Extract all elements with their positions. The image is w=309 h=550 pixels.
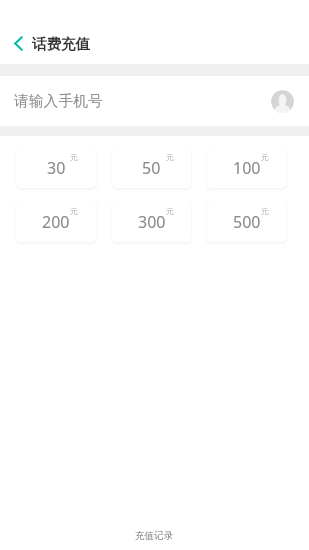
staticText: 50 xyxy=(142,157,161,179)
button[interactable]: 30 xyxy=(16,148,96,188)
button[interactable]: 300 xyxy=(112,202,191,242)
button[interactable]: Pick a contact xyxy=(270,89,294,113)
button[interactable]: 50 xyxy=(112,148,191,188)
button[interactable]: 充值记录 xyxy=(0,522,309,550)
staticText: 话费充值 xyxy=(32,35,90,53)
staticText: 元 xyxy=(70,206,78,216)
staticText: 元 xyxy=(261,206,269,216)
staticText: 100 xyxy=(233,157,261,179)
staticText: 元 xyxy=(166,152,174,162)
button[interactable]: 请输入手机号 xyxy=(0,76,309,126)
staticText: 元 xyxy=(70,152,78,162)
staticText: 元 xyxy=(166,206,174,216)
staticText: 请输入手机号 xyxy=(14,92,103,111)
button[interactable]: 500 xyxy=(207,202,286,242)
button[interactable]: 200 xyxy=(16,202,96,242)
button[interactable]: 100 xyxy=(207,148,286,188)
button[interactable]: Back xyxy=(0,20,36,64)
staticText: 30 xyxy=(47,157,66,179)
staticText: 500 xyxy=(233,211,261,233)
staticText: 元 xyxy=(261,152,269,162)
staticText: 200 xyxy=(42,211,70,233)
staticText: 300 xyxy=(138,211,166,233)
staticText: 充值记录 xyxy=(135,530,174,542)
